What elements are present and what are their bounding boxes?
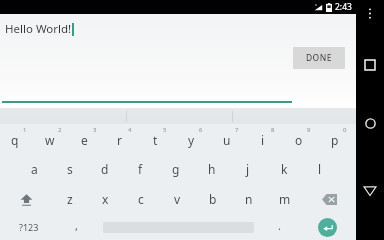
button[interactable]: Enter xyxy=(299,214,356,240)
button[interactable]: s xyxy=(52,154,87,184)
button[interactable]: y xyxy=(176,124,212,154)
staticText: 6 xyxy=(199,126,203,134)
staticText: 4 xyxy=(128,126,132,134)
button[interactable]: n xyxy=(231,184,267,214)
staticText: 1 xyxy=(23,126,27,134)
staticText: ?123 xyxy=(19,221,39,233)
button[interactable]: More options xyxy=(360,2,380,24)
staticText: q xyxy=(11,132,19,148)
button[interactable]: u xyxy=(212,124,248,154)
button[interactable]: Home xyxy=(358,111,382,135)
staticText: p xyxy=(331,132,339,148)
button[interactable]: x xyxy=(87,184,123,214)
staticText: 0 xyxy=(343,126,347,134)
staticText: g xyxy=(172,161,180,177)
staticText: s xyxy=(67,161,73,177)
button[interactable]: ?123 xyxy=(0,214,57,240)
staticText: c xyxy=(138,191,144,207)
button[interactable]: l xyxy=(302,154,338,184)
staticText: i xyxy=(261,132,265,148)
button[interactable]: Space xyxy=(96,214,260,240)
staticText: u xyxy=(223,132,231,148)
button[interactable]: Period xyxy=(260,214,299,240)
staticText: r xyxy=(117,132,122,148)
button[interactable]: g xyxy=(158,154,194,184)
button[interactable]: t xyxy=(140,124,176,154)
staticText: e xyxy=(81,132,88,148)
staticText: , xyxy=(75,218,78,233)
button[interactable]: d xyxy=(87,154,122,184)
button[interactable]: k xyxy=(266,154,302,184)
button[interactable]: Comma xyxy=(57,214,96,240)
staticText: j xyxy=(246,161,250,177)
staticText: 2 xyxy=(58,126,62,134)
button[interactable]: b xyxy=(195,184,231,214)
staticText: 9 xyxy=(307,126,311,134)
staticText: 2:43 xyxy=(335,1,352,13)
button[interactable]: a xyxy=(17,154,52,184)
button[interactable]: o xyxy=(284,124,320,154)
button[interactable]: w xyxy=(35,124,70,154)
staticText: t xyxy=(153,132,158,148)
staticText: o xyxy=(295,132,303,148)
button[interactable]: Shift xyxy=(0,184,52,214)
staticText: x xyxy=(102,191,109,207)
staticText: DONE xyxy=(306,52,332,64)
staticText: y xyxy=(188,132,195,148)
button[interactable]: r xyxy=(105,124,140,154)
button[interactable]: DONE xyxy=(293,47,345,69)
button[interactable]: m xyxy=(267,184,303,214)
button[interactable]: Backspace xyxy=(303,184,356,214)
button[interactable]: f xyxy=(122,154,158,184)
staticText: a xyxy=(31,161,38,177)
staticText: 8 xyxy=(271,126,275,134)
staticText: l xyxy=(318,161,322,177)
button[interactable]: c xyxy=(123,184,159,214)
button[interactable]: v xyxy=(159,184,195,214)
staticText: Hello World! xyxy=(5,21,72,37)
staticText: h xyxy=(208,161,216,177)
staticText: 3 xyxy=(93,126,97,134)
button[interactable]: j xyxy=(230,154,266,184)
staticText: n xyxy=(245,191,253,207)
button[interactable]: z xyxy=(52,184,87,214)
staticText: 7 xyxy=(235,126,239,134)
button[interactable]: i xyxy=(248,124,284,154)
button[interactable]: h xyxy=(194,154,230,184)
button[interactable]: q xyxy=(0,124,35,154)
button[interactable]: e xyxy=(70,124,105,154)
staticText: . xyxy=(278,218,281,233)
staticText: m xyxy=(279,191,291,207)
button[interactable]: Back xyxy=(358,179,382,203)
button[interactable]: p xyxy=(320,124,356,154)
staticText: b xyxy=(209,191,217,207)
staticText: v xyxy=(174,191,181,207)
button[interactable]: Recent apps xyxy=(358,53,382,77)
staticText: w xyxy=(45,132,55,148)
staticText: d xyxy=(101,161,109,177)
staticText: f xyxy=(138,161,143,177)
staticText: k xyxy=(281,161,288,177)
staticText: 5 xyxy=(163,126,167,134)
staticText: z xyxy=(67,191,73,207)
